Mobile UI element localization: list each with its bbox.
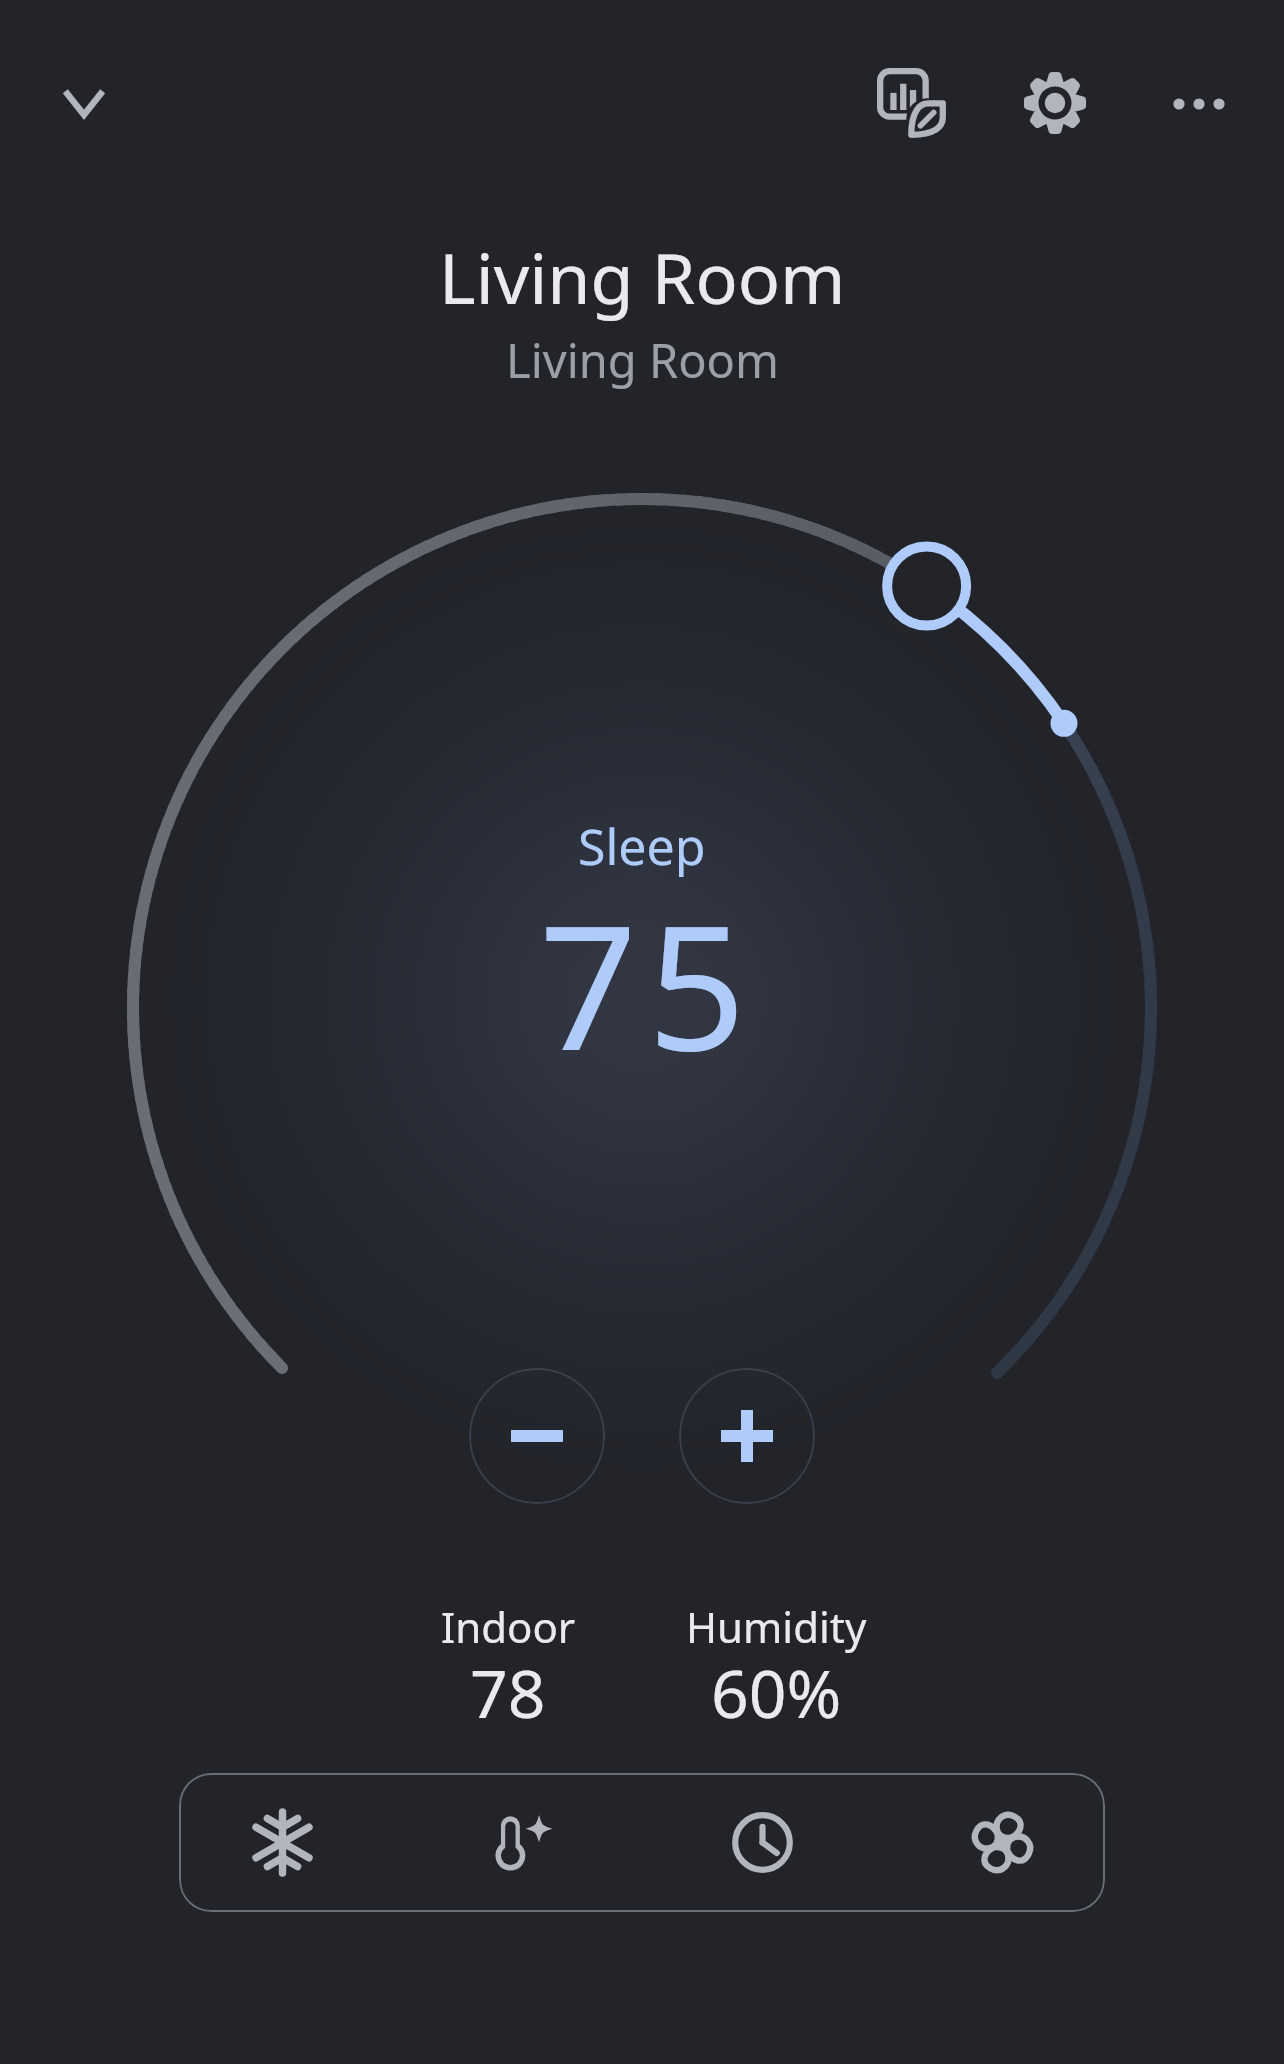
button[interactable]: Decrease temperature bbox=[469, 1368, 605, 1504]
button[interactable]: Collapse bbox=[30, 50, 138, 158]
staticText: 75 bbox=[539, 866, 756, 1100]
button[interactable]: Cool bbox=[199, 1783, 365, 1902]
button[interactable]: Schedule bbox=[679, 1783, 845, 1902]
button[interactable]: Eco temperature bbox=[440, 1783, 606, 1902]
staticText: Indoor bbox=[441, 1598, 576, 1655]
button[interactable]: Energy history bbox=[858, 49, 966, 157]
staticText: 60% bbox=[711, 1647, 842, 1737]
staticText: 78 bbox=[470, 1647, 546, 1737]
staticText: Sleep bbox=[578, 812, 706, 880]
staticText: Living Room bbox=[439, 229, 846, 324]
button[interactable]: More options bbox=[1145, 50, 1253, 158]
staticText: Living Room bbox=[506, 328, 779, 392]
button[interactable]: Fan bbox=[919, 1783, 1085, 1902]
button[interactable]: Settings bbox=[1001, 49, 1109, 157]
staticText: Humidity bbox=[686, 1598, 867, 1655]
button[interactable]: Increase temperature bbox=[679, 1368, 815, 1504]
